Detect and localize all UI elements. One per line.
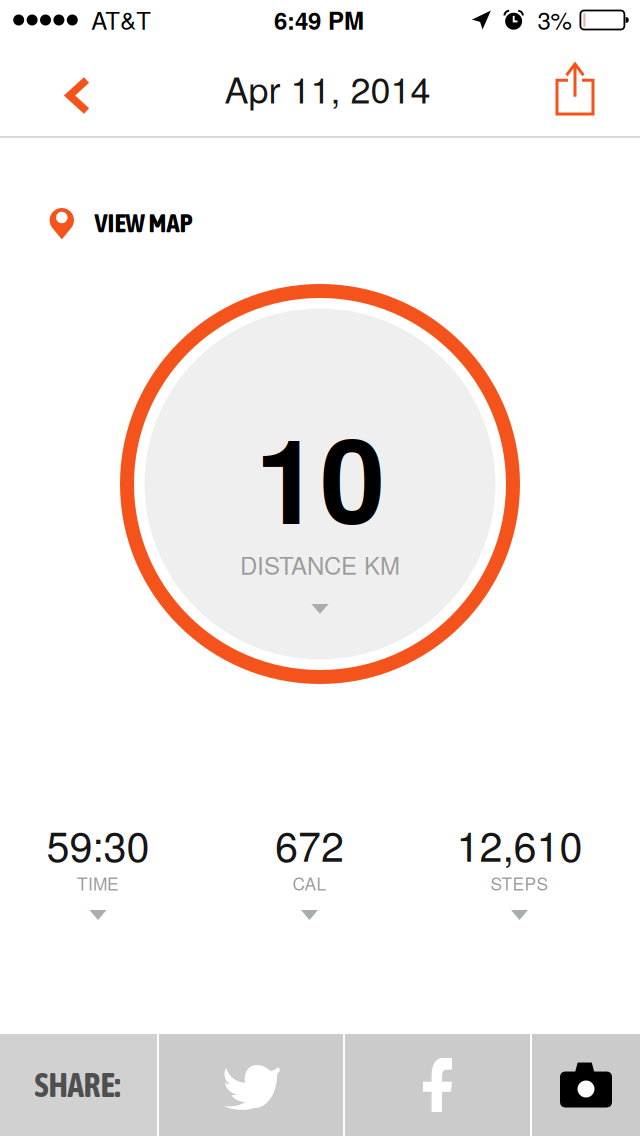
staticText: Apr 11, 2014 xyxy=(224,62,430,114)
button[interactable]: Back xyxy=(0,40,126,136)
staticText: DISTANCE KM xyxy=(240,547,400,582)
staticText: CAL xyxy=(292,871,326,895)
button[interactable]: 10 xyxy=(140,430,500,650)
button[interactable]: 672 xyxy=(209,822,409,932)
staticText: 10 xyxy=(255,392,385,560)
button[interactable]: 59:30 xyxy=(0,822,198,932)
staticText: 672 xyxy=(275,814,344,874)
staticText: 3% xyxy=(537,2,571,37)
staticText: SHARE: xyxy=(34,1066,120,1104)
staticText: VIEW MAP xyxy=(94,207,192,238)
button[interactable]: VIEW MAP xyxy=(40,193,205,250)
staticText: 59:30 xyxy=(46,814,149,874)
staticText: 6:49 PM xyxy=(274,3,364,37)
staticText: STEPS xyxy=(490,871,548,895)
staticText: TIME xyxy=(77,871,119,895)
button[interactable]: Share on Twitter xyxy=(159,1034,343,1136)
staticText: 12,610 xyxy=(456,814,582,874)
button[interactable]: Share xyxy=(525,40,640,138)
button[interactable]: 12,610 xyxy=(419,822,619,932)
button[interactable]: SHARE: xyxy=(0,1034,157,1136)
button[interactable]: Take photo xyxy=(532,1034,640,1136)
staticText: AT&T xyxy=(91,2,151,37)
button[interactable]: Share on Facebook xyxy=(345,1034,530,1136)
